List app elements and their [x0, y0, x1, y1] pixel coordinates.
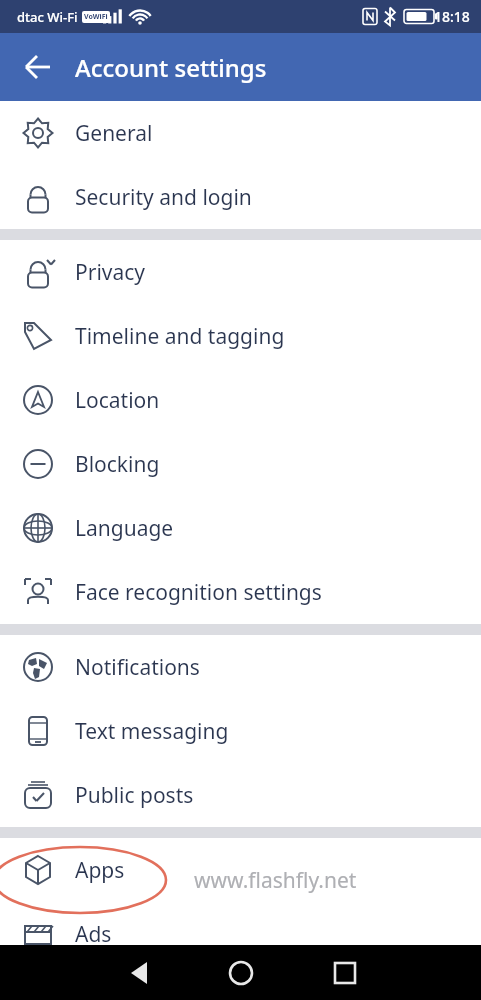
button[interactable]: Recent apps — [320, 948, 370, 998]
staticText: Language — [75, 514, 174, 543]
staticText: Location — [75, 386, 160, 415]
staticText: Notifications — [75, 653, 200, 682]
staticText: Apps — [75, 856, 125, 885]
staticText: dtac Wi-Fi — [17, 8, 78, 26]
staticText: General — [75, 119, 153, 148]
staticText: Blocking — [75, 450, 160, 479]
staticText: Ads — [75, 920, 112, 949]
button[interactable]: Privacy — [0, 240, 481, 304]
button[interactable]: Location — [0, 368, 481, 432]
button[interactable]: Ads — [0, 902, 481, 966]
staticText: www.flashfly.net — [194, 866, 357, 895]
button[interactable]: Face recognition settings — [0, 560, 481, 624]
button[interactable]: Back — [115, 948, 165, 998]
button[interactable]: Timeline and tagging — [0, 304, 481, 368]
staticText: Security and login — [75, 183, 252, 212]
staticText: Privacy — [75, 258, 146, 287]
button[interactable]: Back — [12, 41, 64, 93]
button[interactable]: General — [0, 101, 481, 165]
staticText: Public posts — [75, 781, 194, 810]
button[interactable]: Notifications — [0, 635, 481, 699]
staticText: Timeline and tagging — [75, 322, 285, 351]
staticText: Face recognition settings — [75, 578, 322, 607]
button[interactable]: Public posts — [0, 763, 481, 827]
staticText: Account settings — [75, 51, 267, 84]
button[interactable]: Text messaging — [0, 699, 481, 763]
button[interactable]: Blocking — [0, 432, 481, 496]
button[interactable]: Security and login — [0, 165, 481, 229]
button[interactable]: Language — [0, 496, 481, 560]
staticText: VoWiFi — [84, 12, 108, 22]
button[interactable]: Apps — [0, 838, 481, 902]
staticText: Text messaging — [75, 717, 229, 746]
staticText: 18:18 — [434, 7, 470, 26]
button[interactable]: Home — [216, 948, 266, 998]
